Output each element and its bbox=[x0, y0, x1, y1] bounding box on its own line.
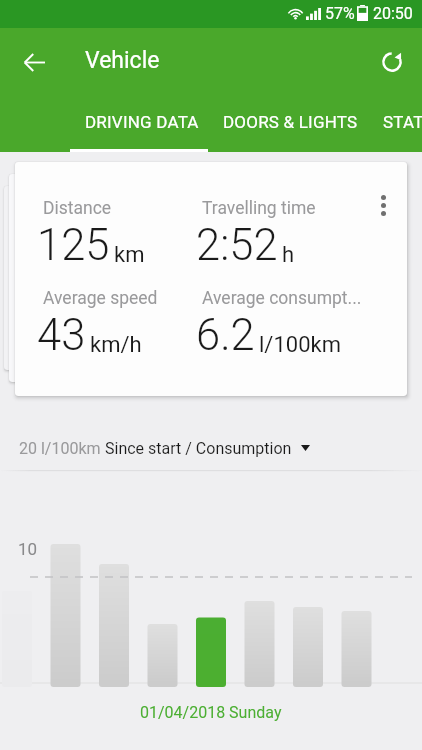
staticText: Average speed bbox=[43, 288, 158, 309]
button[interactable]: More options bbox=[363, 185, 403, 225]
staticText: Average consumpt... bbox=[202, 288, 362, 309]
staticText: 10 bbox=[18, 539, 38, 559]
staticText: km bbox=[114, 242, 145, 268]
button[interactable]: DRIVING DATA bbox=[73, 104, 211, 152]
staticText: Vehicle bbox=[85, 47, 160, 74]
staticText: Distance bbox=[43, 198, 112, 219]
staticText: 2:52 bbox=[196, 220, 278, 271]
staticText: 20 l/100km bbox=[19, 439, 101, 458]
staticText: STAT bbox=[383, 112, 422, 132]
staticText: 57% bbox=[325, 4, 355, 23]
staticText: 125 bbox=[37, 220, 110, 271]
staticText: Travelling time bbox=[202, 198, 316, 219]
staticText: h bbox=[282, 242, 295, 268]
staticText: l/100km bbox=[259, 332, 341, 358]
staticText: 20:50 bbox=[373, 4, 413, 23]
button[interactable]: DOORS & LIGHTS bbox=[209, 104, 371, 152]
staticText: 43 bbox=[37, 310, 86, 361]
button[interactable]: Distance bbox=[15, 162, 407, 396]
staticText: 6.2 bbox=[196, 310, 255, 361]
staticText: km/h bbox=[90, 332, 142, 358]
button[interactable]: Refresh bbox=[369, 37, 417, 85]
button[interactable]: 20 l/100km bbox=[0, 425, 422, 471]
button[interactable]: Back bbox=[10, 38, 58, 86]
staticText: 01/04/2018 Sunday bbox=[140, 703, 282, 722]
staticText: DRIVING DATA bbox=[85, 112, 199, 132]
button[interactable]: STAT bbox=[370, 104, 422, 152]
staticText: Since start / Consumption bbox=[105, 439, 292, 458]
staticText: DOORS & LIGHTS bbox=[223, 112, 358, 132]
